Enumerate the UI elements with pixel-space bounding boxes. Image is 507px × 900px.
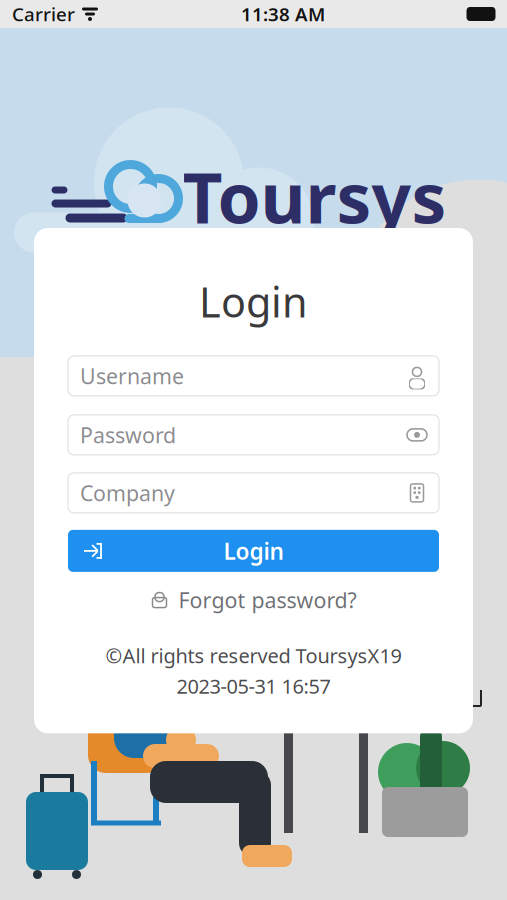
- staticText: Login: [223, 536, 283, 566]
- staticText: Password: [80, 421, 176, 449]
- staticText: ©All rights reserved ToursysX19: [105, 642, 401, 669]
- staticText: Company: [80, 479, 175, 507]
- staticText: Forgot password?: [178, 586, 356, 614]
- staticText: 2023-05-31 16:57: [176, 673, 330, 699]
- button[interactable]: Login: [68, 530, 439, 572]
- staticText: Username: [80, 362, 184, 390]
- staticText: Login: [199, 274, 308, 329]
- button[interactable]: Forgot password?: [68, 576, 439, 624]
- staticText: Carrier: [12, 2, 75, 26]
- staticText: 11:38 AM: [241, 2, 325, 26]
- staticText: Toursys: [182, 150, 446, 243]
